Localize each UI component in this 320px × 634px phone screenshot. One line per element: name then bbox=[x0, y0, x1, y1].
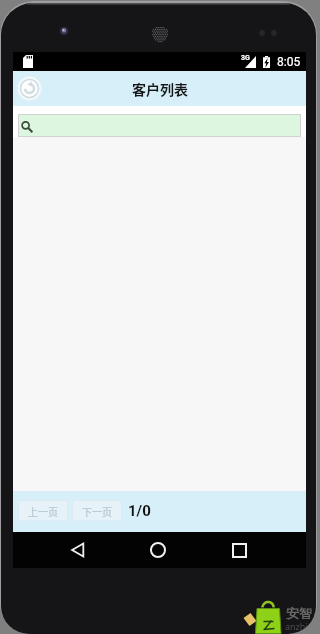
button[interactable]: Back bbox=[66, 538, 90, 562]
staticText: 安智 bbox=[286, 605, 312, 621]
staticText: 客户列表 bbox=[132, 79, 188, 99]
staticText: 上一页 bbox=[28, 504, 58, 518]
staticText: anzhi.com bbox=[285, 620, 316, 632]
button[interactable]: Recents bbox=[227, 538, 251, 562]
button[interactable] bbox=[18, 114, 301, 137]
staticText: 1/0 bbox=[128, 502, 151, 520]
button[interactable]: 下一页 bbox=[72, 500, 122, 521]
staticText: 8:05 bbox=[277, 55, 301, 69]
staticText: 3G bbox=[241, 54, 250, 62]
staticText: 下一页 bbox=[82, 504, 112, 518]
button[interactable]: 上一页 bbox=[18, 500, 68, 521]
button[interactable]: Home bbox=[146, 538, 170, 562]
button[interactable]: Back bbox=[17, 76, 42, 101]
